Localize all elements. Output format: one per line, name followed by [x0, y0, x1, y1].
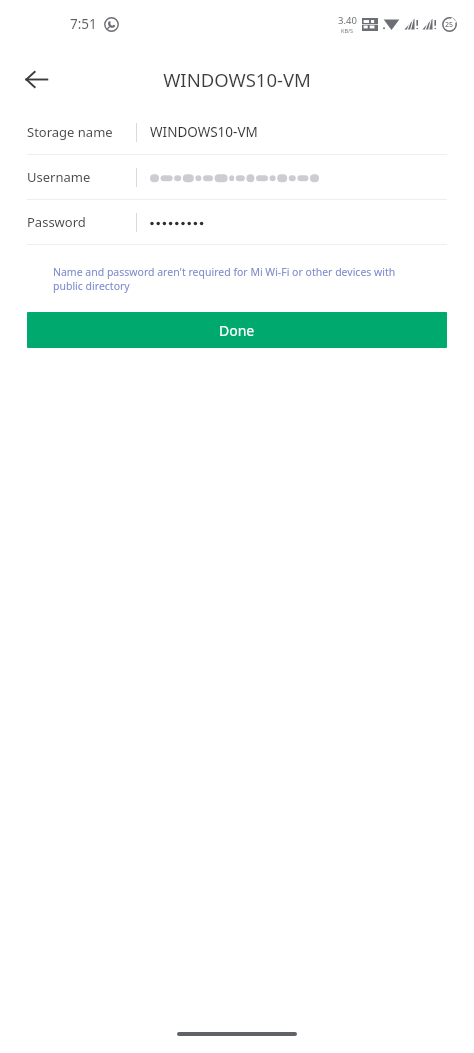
staticText: Storage name — [27, 123, 113, 141]
staticText: Password — [27, 213, 86, 231]
staticText: Done — [219, 321, 255, 340]
button[interactable]: Done — [27, 312, 447, 348]
button[interactable]: Password — [0, 200, 474, 244]
staticText: Name and password aren't required for Mi… — [53, 265, 424, 293]
staticText: Username — [27, 168, 91, 186]
button[interactable]: Username — [0, 155, 474, 199]
button[interactable]: Back — [16, 59, 56, 99]
button[interactable]: Storage name — [0, 110, 474, 154]
staticText: WINDOWS10-VM — [150, 123, 258, 141]
staticText: 7:51 — [70, 15, 97, 33]
staticText: 3.40 — [338, 14, 357, 27]
staticText: WINDOWS10-VM — [0, 67, 474, 92]
staticText: 25 — [445, 20, 454, 30]
staticText: KB/S — [341, 27, 354, 34]
